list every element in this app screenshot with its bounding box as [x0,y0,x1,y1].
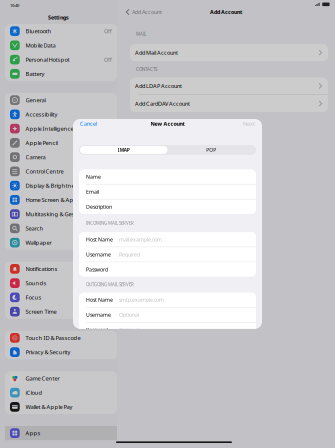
staticText: MAIL [136,31,146,37]
staticText: Battery [25,70,44,78]
button[interactable]: Screen Time [5,304,117,319]
button[interactable]: Privacy & Security [5,345,117,359]
button[interactable]: Multitasking & Gestures [5,207,117,221]
button[interactable]: Sounds [5,276,117,290]
staticText: Settings [48,14,69,21]
staticText: Home Screen & App Library [25,196,96,204]
button[interactable]: IMAP [80,146,167,154]
button[interactable]: Search [5,221,117,235]
staticText: Off [104,27,112,35]
staticText: General [25,96,45,104]
button[interactable]: Home Screen & App Library [5,193,117,207]
button[interactable]: Bluetooth [5,24,117,38]
staticText: Wallet & Apple Pay [25,403,72,411]
button[interactable]: Wallet & Apple Pay [5,400,117,414]
button[interactable]: Touch ID & Passcode [5,331,117,345]
staticText: Apple Pencil [25,139,57,147]
staticText: Touch ID & Passcode [25,334,80,342]
button[interactable]: Notifications [5,262,117,276]
staticText: Optional [119,326,139,333]
button[interactable]: Game Center [5,371,117,385]
staticText: Apple Intelligence & Siri [25,125,86,132]
staticText: Apps [25,429,40,437]
button[interactable]: Accessibility [5,107,117,121]
staticText: Control Centre [25,167,63,175]
staticText: Focus [25,293,41,301]
button[interactable]: Control Centre [5,164,117,178]
staticText: Name [86,173,101,180]
staticText: CONTACTS [136,66,157,72]
staticText: Cancel [80,120,97,127]
button[interactable]: Add Mail Account [130,44,328,61]
staticText: Sounds [25,279,46,287]
staticText: Username [86,311,111,318]
staticText: Description [86,203,112,210]
staticText: Add Mail Account [135,49,178,56]
staticText: Add Account [210,8,242,16]
staticText: Email [86,188,99,195]
staticText: Bluetooth [25,27,51,35]
staticText: Display & Brightness [25,182,80,189]
button[interactable]: POP [167,146,255,154]
button[interactable]: Focus [5,290,117,304]
staticText: iCloud [25,389,42,396]
button[interactable]: Mobile Data [5,38,117,52]
staticText: Host Name [86,236,113,243]
staticText: mail.example.com [119,236,162,243]
staticText: Password [86,266,108,273]
staticText: Notifications [25,265,57,273]
staticText: POP [206,147,216,153]
button[interactable]: General [5,93,117,107]
button[interactable]: Apps [5,426,117,440]
staticText: Off [104,56,112,63]
staticText: IMAP [118,147,130,153]
staticText: Add Account [132,8,162,16]
button[interactable]: iCloud [5,385,117,400]
staticText: 10:40 [10,3,19,8]
button[interactable]: Battery [5,67,117,81]
staticText: Camera [25,153,45,161]
staticText: Next [243,120,255,127]
button[interactable]: Display & Brightness [5,178,117,193]
button[interactable]: Apple Intelligence & Siri [5,121,117,136]
staticText: Accessibility [25,110,57,118]
staticText: New Account [150,120,184,127]
staticText: smtp.example.com [119,296,164,303]
staticText: Add CardDAV Account [135,100,190,107]
staticText: Mobile Data [25,41,55,49]
staticText: Personal Hotspot [25,56,69,63]
staticText: Required [119,251,140,258]
button[interactable]: Add CardDAV Account [130,95,328,112]
staticText: Privacy & Security [25,348,70,356]
button[interactable]: Next [236,116,262,131]
button[interactable]: Add LDAP Account [130,77,328,94]
button[interactable]: Camera [5,150,117,164]
staticText: Multitasking & Gestures [25,210,88,218]
staticText: Optional [119,311,139,318]
staticText: Screen Time [25,308,56,315]
staticText: Search [25,224,43,232]
button[interactable]: Apple Pencil [5,136,117,150]
staticText: OUTGOING MAIL SERVER [86,282,134,288]
staticText: Add LDAP Account [135,82,182,90]
staticText: Password [86,326,108,333]
button[interactable]: Cancel [73,116,104,131]
staticText: Username [86,251,111,258]
staticText: Game Center [25,374,59,382]
button[interactable]: Add Account [117,4,168,20]
button[interactable]: Personal Hotspot [5,52,117,67]
button[interactable]: Wallpaper [5,235,117,250]
staticText: INCOMING MAIL SERVER [86,220,134,226]
staticText: Host Name [86,296,113,303]
staticText: Wallpaper [25,239,51,246]
